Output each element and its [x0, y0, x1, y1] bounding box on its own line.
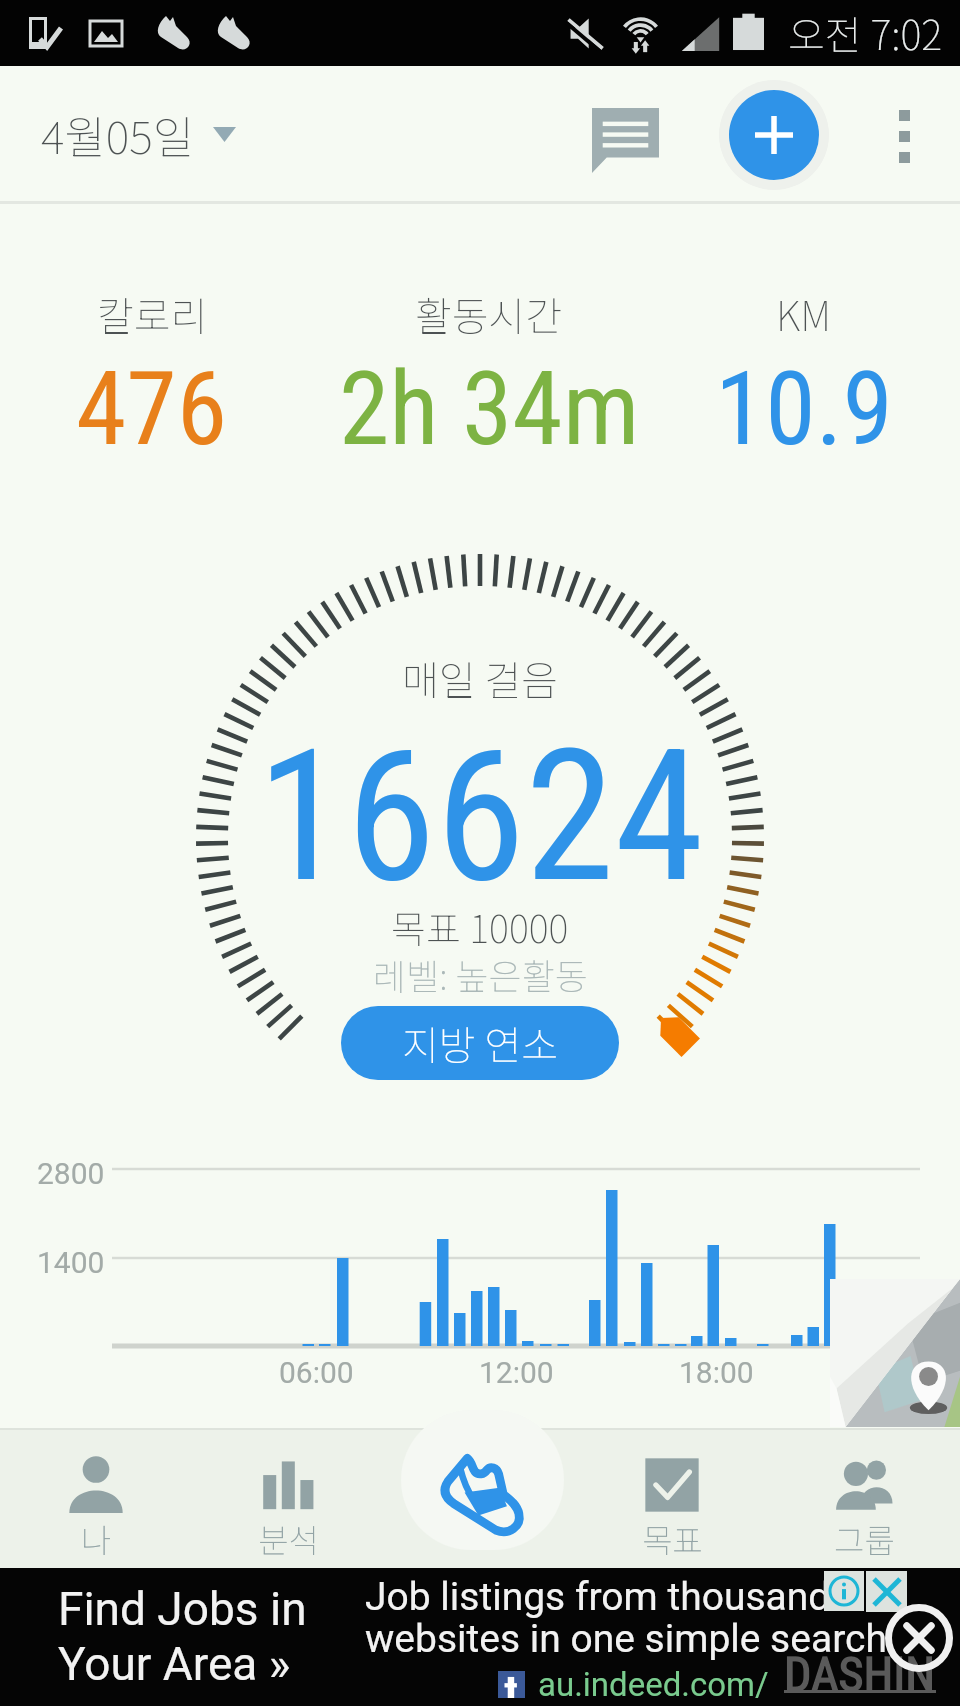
staticText: 목표 [642, 1515, 703, 1563]
button[interactable]: Map [830, 1279, 960, 1427]
button[interactable]: Dismiss ad [866, 1571, 907, 1612]
staticText: 활동시간 [415, 285, 563, 343]
staticText: Job listings from thousands websites in … [365, 1574, 898, 1662]
button[interactable]: More options [866, 98, 943, 175]
staticText: DASHIN [784, 1646, 935, 1702]
button[interactable]: Ad info [824, 1571, 864, 1611]
staticText: 목표 10000 [391, 899, 569, 954]
staticText: 4월05일 [41, 102, 195, 167]
button[interactable]: Close ad [885, 1604, 953, 1672]
staticText: au.indeed.com/ [538, 1665, 769, 1704]
button[interactable]: 목표 [576, 1428, 768, 1568]
staticText: 2800 [37, 1156, 105, 1191]
staticText: 06:00 [279, 1355, 354, 1390]
staticText: 18:00 [679, 1355, 754, 1390]
button[interactable]: 분석 [192, 1428, 384, 1568]
staticText: 분석 [258, 1515, 319, 1563]
button[interactable]: 나 [0, 1428, 192, 1568]
button[interactable]: Find Jobs in Your Area » [0, 1568, 960, 1706]
button[interactable]: Steps [401, 1410, 564, 1550]
button[interactable]: 그룹 [768, 1428, 960, 1568]
staticText: KM [776, 285, 832, 343]
staticText: 16624 [257, 711, 704, 923]
button[interactable]: KM [704, 285, 904, 465]
staticText: 2h 34m [339, 349, 640, 465]
staticText: 나 [81, 1515, 112, 1563]
staticText: 그룹 [834, 1515, 895, 1563]
staticText: 1400 [37, 1245, 105, 1280]
button[interactable]: Messages [570, 85, 680, 195]
button[interactable]: 4월05일 [27, 84, 248, 185]
staticText: 매일 걸음 [402, 649, 558, 707]
staticText: 10.9 [715, 349, 893, 465]
button[interactable]: 지방 연소 [341, 1006, 619, 1080]
staticText: 칼로리 [97, 285, 208, 343]
staticText: Find Jobs in Your Area » [58, 1582, 307, 1692]
staticText: 지방 연소 [402, 1014, 558, 1072]
button[interactable]: Add [729, 90, 819, 180]
button[interactable]: 활동시간 [324, 285, 654, 465]
staticText: 레벨: 높은활동 [373, 948, 588, 1000]
button[interactable]: 칼로리 [52, 285, 252, 465]
staticText: 오전 7:02 [788, 4, 943, 62]
staticText: 476 [76, 349, 228, 465]
staticText: 12:00 [479, 1355, 554, 1390]
